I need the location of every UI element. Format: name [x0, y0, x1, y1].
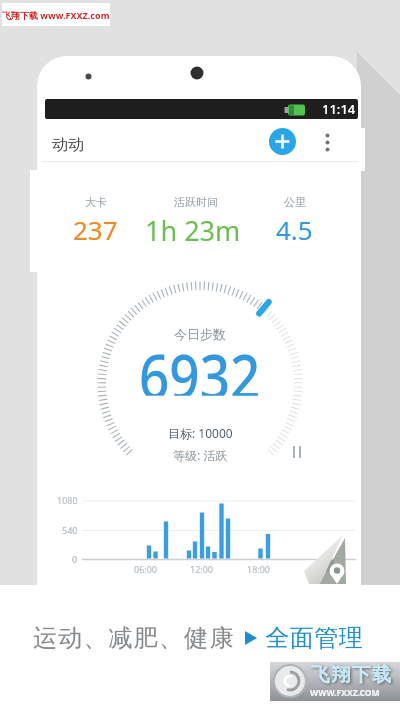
button[interactable]: 运动、减肥、健康: [33, 620, 373, 656]
staticText: 飞翔下载: [310, 663, 392, 687]
staticText: 全面管理: [265, 623, 363, 653]
staticText: 06:00: [134, 563, 158, 575]
staticText: 大卡: [85, 195, 107, 209]
staticText: 活跃时间: [174, 195, 218, 209]
staticText: 12:00: [190, 563, 214, 575]
button[interactable]: [269, 128, 296, 155]
staticText: 运动、减肥、健康: [33, 623, 235, 653]
staticText: 237: [73, 212, 118, 242]
staticText: 11:14: [322, 100, 356, 118]
staticText: 1h 23m: [145, 212, 241, 242]
staticText: WWW.FXXZ.COM: [310, 687, 380, 699]
staticText: 等级: 活跃: [173, 447, 228, 462]
staticText: 飞翔下载 www.FXXZ.com: [2, 9, 110, 21]
button[interactable]: [318, 128, 338, 156]
staticText: 1080: [57, 494, 78, 506]
staticText: 动动: [52, 135, 84, 155]
staticText: 4.5: [276, 212, 313, 242]
staticText: 540: [62, 524, 78, 536]
staticText: 公里: [284, 195, 306, 209]
staticText: 今日步数: [174, 326, 226, 341]
staticText: 目标: 10000: [168, 425, 233, 440]
staticText: 0: [72, 553, 78, 565]
staticText: 18:00: [247, 563, 271, 575]
staticText: 6932: [139, 332, 261, 396]
